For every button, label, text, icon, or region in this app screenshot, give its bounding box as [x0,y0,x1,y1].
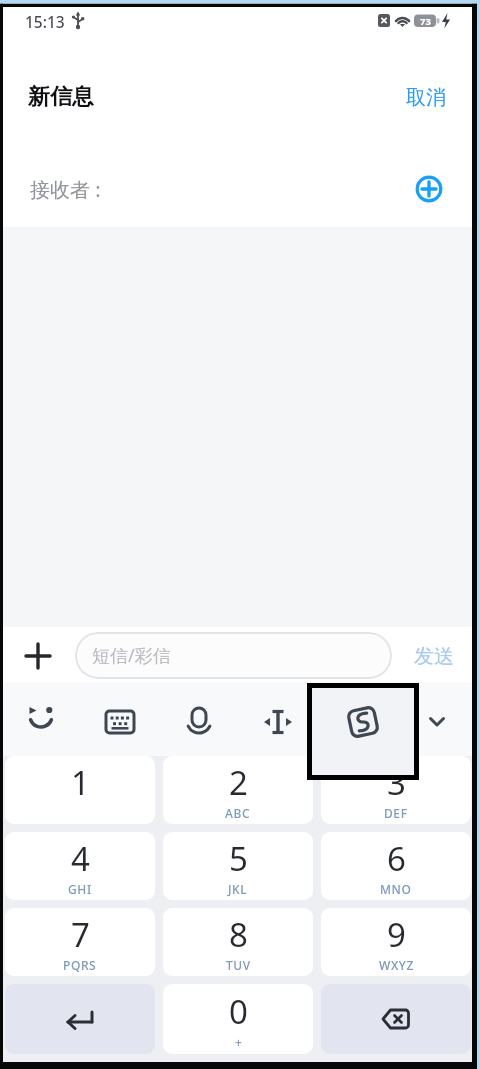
staticText: 8 [229,912,248,957]
staticText: 取消 [406,85,446,110]
staticText: MNO [380,881,412,897]
staticText: ABC [225,805,251,821]
button[interactable]: 8 [163,908,313,976]
staticText: 3 [387,760,406,805]
button[interactable] [101,700,145,744]
staticText: 5 [229,836,248,881]
staticText: 73 [420,15,431,27]
staticText: 7 [71,912,90,957]
staticText: + [235,1034,243,1050]
button[interactable]: 取消 [396,80,456,114]
button[interactable]: 短信/彩信 [75,632,392,679]
staticText: 发送 [414,644,454,669]
staticText: TUV [226,957,251,973]
button[interactable]: 3 [321,756,471,824]
staticText: WXYZ [379,957,414,973]
staticText: 15:13 [25,11,65,32]
button[interactable]: 5 [163,832,313,900]
staticText: 6 [387,836,406,881]
staticText: PQRS [63,957,97,973]
staticText: 接收者 : [30,176,101,203]
button[interactable] [22,700,66,744]
staticText: 1 [71,760,90,805]
button[interactable] [180,700,224,744]
button[interactable]: 2 [163,756,313,824]
staticText: 短信/彩信 [92,643,171,668]
staticText: DEF [384,805,408,821]
button[interactable]: 0 [163,984,313,1054]
button[interactable]: 4 [5,832,155,900]
staticText: 0 [229,989,248,1034]
button[interactable] [410,170,448,208]
staticText: GHI [68,881,92,897]
button[interactable] [5,984,155,1054]
button[interactable]: 9 [321,908,471,976]
button[interactable] [338,700,382,744]
staticText: 4 [71,836,90,881]
button[interactable] [259,700,303,744]
staticText: 新信息 [28,83,94,111]
staticText: JKL [228,881,248,897]
staticText: 9 [387,912,406,957]
button[interactable] [417,700,461,744]
button[interactable]: 1 [5,756,155,824]
staticText: 2 [229,760,248,805]
button[interactable]: 7 [5,908,155,976]
button[interactable] [24,642,52,670]
button[interactable] [321,984,471,1054]
button[interactable]: 6 [321,832,471,900]
button[interactable]: 发送 [404,638,464,674]
